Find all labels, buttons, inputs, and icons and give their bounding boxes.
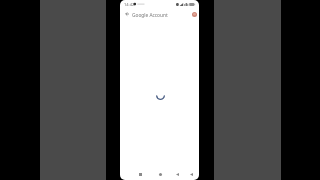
button[interactable]: Back [122, 9, 132, 19]
button[interactable]: Home [155, 169, 165, 179]
staticText: 14:42 [124, 2, 135, 7]
button[interactable]: More options [186, 169, 196, 179]
button[interactable]: Recent apps [135, 169, 145, 179]
button[interactable]: Back [172, 169, 182, 179]
button[interactable]: Account avatar [192, 12, 197, 17]
staticText: Google Account [132, 12, 168, 19]
